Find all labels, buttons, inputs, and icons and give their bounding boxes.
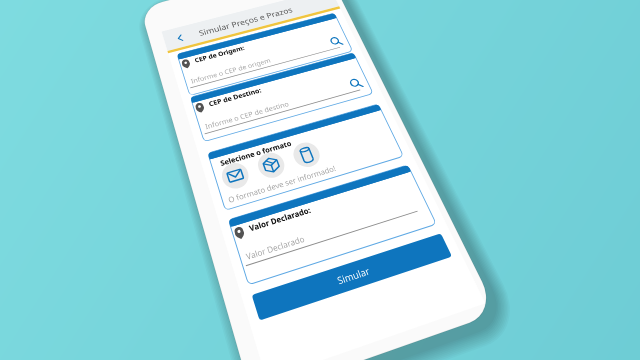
button[interactable]: Buscar CEP de destino	[341, 72, 371, 95]
button[interactable]	[190, 53, 373, 142]
button[interactable]: Buscar CEP de origem	[322, 30, 350, 51]
button[interactable]	[228, 165, 436, 285]
button[interactable]	[177, 13, 353, 95]
button[interactable]: Simular	[252, 233, 452, 320]
button[interactable]	[208, 104, 404, 210]
button[interactable]: Cilindro	[290, 140, 324, 171]
button[interactable]: Voltar	[165, 29, 189, 49]
button[interactable]: Caixa	[255, 150, 289, 181]
button[interactable]: Envelope	[219, 160, 252, 192]
